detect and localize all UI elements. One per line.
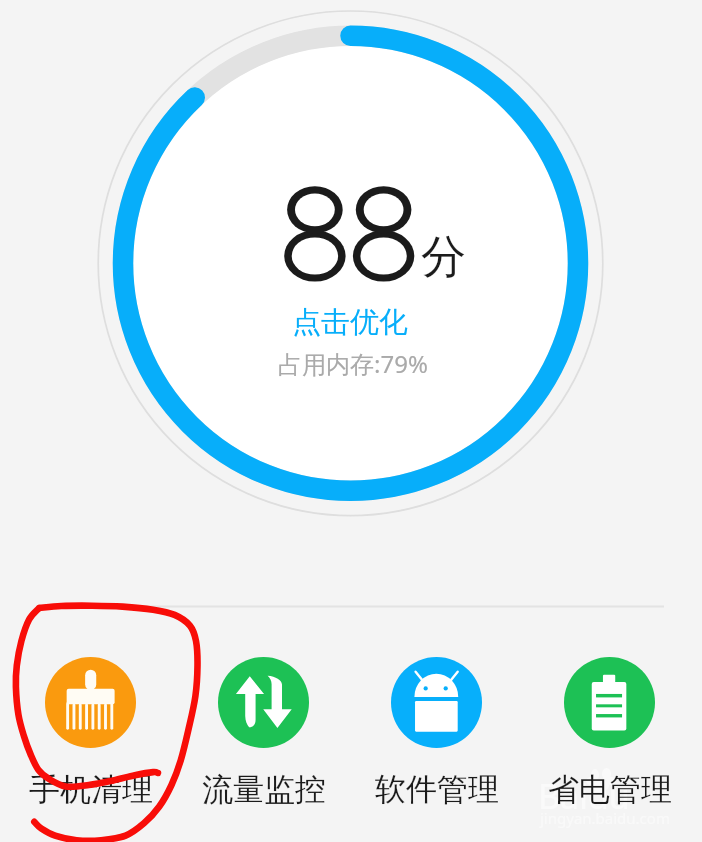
staticText: 分 [421, 229, 466, 286]
staticText: 软件管理 [375, 770, 499, 809]
button[interactable]: App manager [350, 657, 523, 809]
other: Battery saver [564, 657, 655, 748]
other: Data monitor [218, 657, 309, 748]
staticText: 流量监控 [202, 770, 326, 809]
button[interactable]: 分 [258, 140, 478, 390]
staticText: 手机清理 [29, 770, 153, 809]
staticText: 占用内存:79% [278, 347, 428, 380]
button[interactable]: Battery saver [523, 657, 696, 809]
button[interactable]: Data monitor [177, 657, 350, 809]
button[interactable]: Phone cleanup [4, 657, 177, 809]
staticText: 省电管理 [548, 770, 672, 809]
staticText: 点击优化 [292, 304, 408, 341]
other: Phone cleanup [45, 657, 136, 748]
staticText: Baidu [538, 773, 630, 819]
other: App manager [391, 657, 482, 748]
